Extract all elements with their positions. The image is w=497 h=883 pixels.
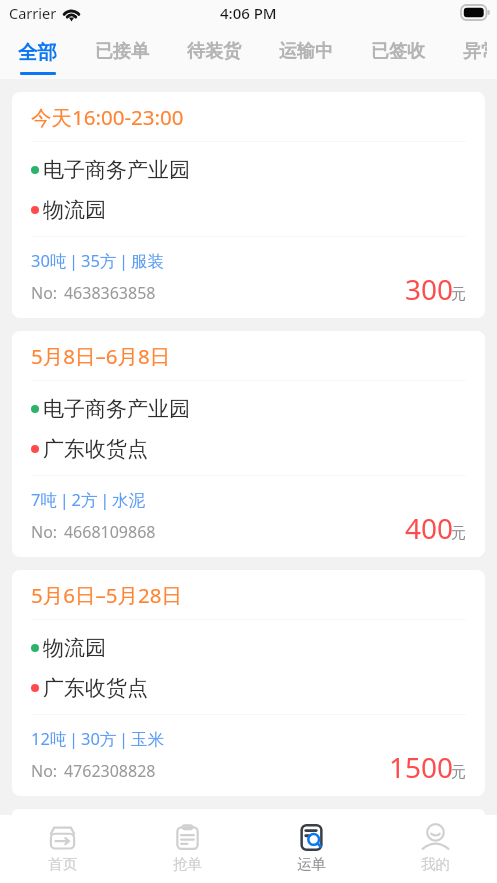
- staticText: 400: [405, 509, 454, 547]
- button[interactable]: 5月8日–6月8日: [12, 331, 485, 557]
- staticText: 抢单: [173, 855, 202, 873]
- staticText: 5月8日–6月8日: [31, 342, 171, 370]
- button[interactable]: 异常: [463, 28, 487, 79]
- staticText: 广东收货点: [43, 675, 148, 701]
- staticText: 4:06 PM: [220, 3, 277, 23]
- button[interactable]: 5月6日–5月28日: [12, 570, 485, 796]
- staticText: 今天16:00-23:00: [31, 103, 184, 131]
- staticText: 运单: [297, 855, 326, 873]
- staticText: 全部: [18, 40, 57, 65]
- staticText: 电子商务产业园: [43, 157, 190, 183]
- button[interactable]: 待装货: [187, 28, 241, 79]
- button[interactable]: 已签收: [371, 28, 425, 79]
- staticText: No: 4762308828: [31, 760, 156, 782]
- staticText: Carrier: [9, 3, 57, 23]
- button[interactable]: 运单: [249, 815, 373, 883]
- staticText: 元: [451, 285, 466, 304]
- staticText: No: 4668109868: [31, 521, 156, 543]
- staticText: 元: [451, 524, 466, 543]
- staticText: 7吨 | 2方 | 水泥: [31, 488, 146, 511]
- staticText: 已接单: [95, 40, 149, 63]
- staticText: 异常: [463, 40, 487, 63]
- staticText: 已签收: [371, 40, 425, 63]
- button[interactable]: 全部: [18, 28, 57, 79]
- button[interactable]: 抢单: [125, 815, 249, 883]
- staticText: 电子商务产业园: [43, 396, 190, 422]
- button[interactable]: 已接单: [95, 28, 149, 79]
- button[interactable]: 我的: [373, 815, 497, 883]
- button[interactable]: 运输中: [279, 28, 333, 79]
- staticText: 30吨 | 35方 | 服装: [31, 249, 164, 272]
- staticText: 待装货: [187, 40, 241, 63]
- staticText: 广东收货点: [43, 436, 148, 462]
- staticText: 1500: [389, 748, 454, 786]
- staticText: 运输中: [279, 40, 333, 63]
- staticText: 我的: [421, 855, 450, 873]
- staticText: No: 4638363858: [31, 282, 156, 304]
- staticText: 300: [405, 270, 454, 308]
- button[interactable]: 首页: [0, 815, 125, 883]
- staticText: 5月6日–5月28日: [31, 581, 182, 609]
- button[interactable]: 今天16:00-23:00: [12, 92, 485, 318]
- staticText: 首页: [48, 855, 77, 873]
- staticText: 元: [451, 763, 466, 782]
- staticText: 12吨 | 30方 | 玉米: [31, 727, 164, 750]
- staticText: 物流园: [43, 635, 106, 661]
- staticText: 物流园: [43, 197, 106, 223]
